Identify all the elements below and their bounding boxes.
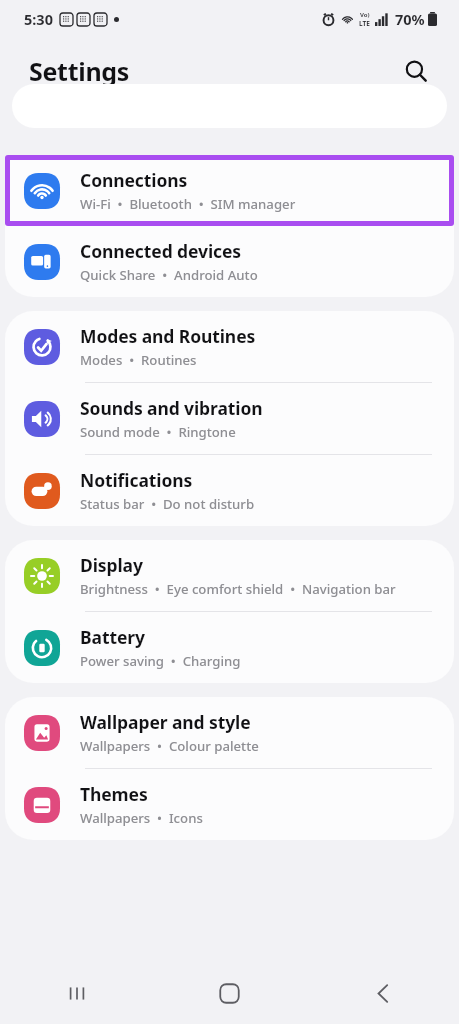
button[interactable]: Back xyxy=(306,963,459,1024)
staticText: LTE xyxy=(359,19,370,28)
button[interactable]: Connected devices xyxy=(5,226,454,297)
staticText: Wi-Fi • Bluetooth • SIM manager xyxy=(80,195,296,213)
staticText: Sounds and vibration xyxy=(80,396,263,420)
staticText: Battery xyxy=(80,625,145,649)
staticText: Connections xyxy=(80,168,188,192)
button[interactable]: Sounds and vibration xyxy=(5,383,454,454)
staticText: Status bar • Do not disturb xyxy=(80,495,255,513)
button[interactable]: Themes xyxy=(5,769,454,840)
staticText: Connections xyxy=(80,168,188,192)
staticText: Modes and Routines xyxy=(80,324,256,348)
button[interactable]: Home xyxy=(153,963,306,1024)
staticText: 70% xyxy=(395,9,425,29)
button[interactable]: Wallpaper and style xyxy=(5,697,454,768)
button[interactable]: Notifications xyxy=(5,455,454,526)
staticText: Modes • Routines xyxy=(80,351,197,369)
staticText: Wallpapers • Icons xyxy=(80,809,203,827)
staticText: Connected devices xyxy=(80,239,241,263)
staticText: Wallpaper and style xyxy=(80,710,251,734)
button[interactable]: Search settings xyxy=(396,51,436,91)
button[interactable]: Connections xyxy=(5,155,454,226)
staticText: Wallpapers • Colour palette xyxy=(80,737,259,755)
button[interactable]: Connections xyxy=(10,160,449,221)
button[interactable]: Display xyxy=(5,540,454,611)
staticText: Quick Share • Android Auto xyxy=(80,266,258,284)
button[interactable]: Battery xyxy=(5,612,454,683)
staticText: Power saving • Charging xyxy=(80,652,241,670)
staticText: 5:30 xyxy=(24,9,53,29)
staticText: Sound mode • Ringtone xyxy=(80,423,236,441)
button[interactable]: Recent apps xyxy=(0,963,153,1024)
staticText: Vo) xyxy=(360,11,370,19)
staticText: Themes xyxy=(80,782,148,806)
staticText: Brightness • Eye comfort shield • Naviga… xyxy=(80,580,396,598)
staticText: Notifications xyxy=(80,468,193,492)
staticText: Wi-Fi • Bluetooth • SIM manager xyxy=(80,195,296,213)
button[interactable]: Modes and Routines xyxy=(5,311,454,382)
staticText: Settings xyxy=(29,54,130,88)
staticText: Display xyxy=(80,553,143,577)
